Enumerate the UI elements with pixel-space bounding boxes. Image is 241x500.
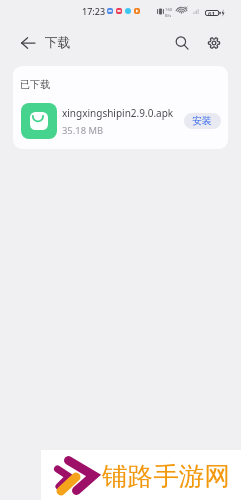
staticText: 160 (165, 7, 173, 13)
staticText: 下载 (45, 35, 71, 51)
staticText: 35.18 MB (62, 124, 104, 137)
button[interactable]: Settings (201, 30, 226, 55)
staticText: 17:23 (82, 5, 106, 17)
button[interactable]: 安装 (184, 113, 221, 129)
staticText: B/s (165, 13, 172, 19)
staticText: 铺路手游网 (102, 460, 230, 492)
staticText: 61 (208, 10, 215, 18)
button[interactable]: Back (15, 30, 40, 55)
staticText: 安装 (192, 115, 212, 127)
staticText: 已下载 (20, 78, 50, 91)
button[interactable]: Search (169, 30, 194, 55)
staticText: xingxingshipin2.9.0.apk (62, 106, 174, 120)
